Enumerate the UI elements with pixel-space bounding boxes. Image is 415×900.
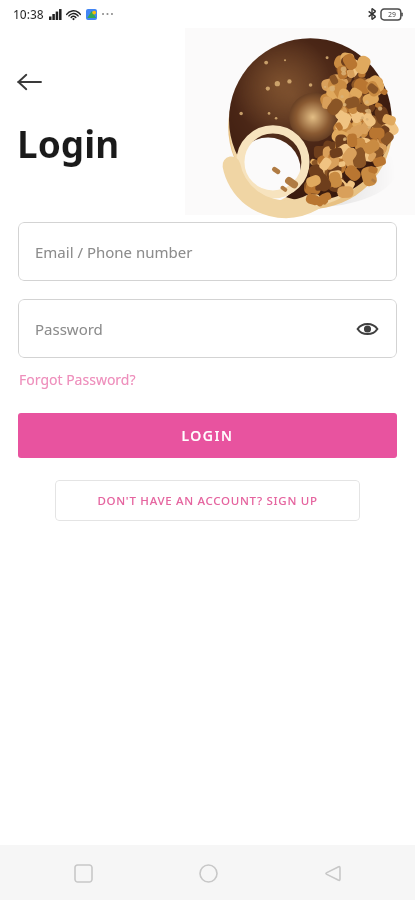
button[interactable]: Home: [185, 850, 231, 896]
staticText: LOGIN: [181, 426, 234, 445]
staticText: Login: [17, 118, 120, 168]
button[interactable]: Back: [309, 850, 355, 896]
button[interactable]: Back: [9, 62, 49, 102]
button[interactable]: Show password: [351, 313, 383, 345]
button[interactable]: DON'T HAVE AN ACCOUNT? SIGN UP: [55, 480, 360, 521]
button[interactable]: Password: [18, 299, 397, 358]
staticText: 29: [388, 10, 397, 20]
button[interactable]: Forgot Password?: [18, 368, 137, 391]
staticText: 10:38: [13, 6, 44, 22]
staticText: DON'T HAVE AN ACCOUNT? SIGN UP: [97, 493, 318, 509]
staticText: Forgot Password?: [19, 370, 136, 389]
button[interactable]: LOGIN: [18, 413, 397, 458]
button[interactable]: Recent apps: [60, 850, 106, 896]
staticText: Email / Phone number: [35, 242, 193, 262]
staticText: Password: [35, 319, 103, 339]
button[interactable]: Email / Phone number: [18, 222, 397, 281]
